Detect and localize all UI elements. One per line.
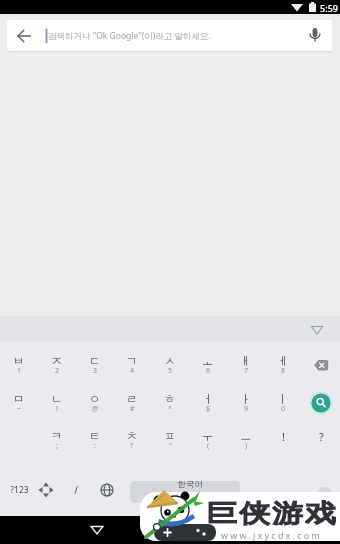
staticText: 한국어	[177, 479, 203, 490]
staticText: ㅜ	[202, 429, 214, 443]
staticText: 2	[55, 366, 60, 376]
staticText: ㄱ	[126, 354, 138, 368]
staticText: "	[169, 441, 172, 451]
button[interactable]	[130, 481, 240, 503]
staticText: 巨	[206, 498, 237, 526]
button[interactable]: ㅇ	[76, 379, 114, 417]
staticText: #	[130, 404, 135, 414]
staticText: ㅇ	[89, 392, 101, 406]
button[interactable]: ㅁ	[0, 379, 38, 417]
staticText: 4	[130, 366, 135, 376]
button[interactable]: ㅜ	[189, 416, 227, 454]
button[interactable]	[77, 516, 117, 544]
staticText: $	[206, 404, 211, 414]
button[interactable]: ㅌ	[76, 416, 114, 454]
staticText: ㅎ	[164, 392, 176, 406]
button[interactable]	[302, 379, 340, 417]
staticText: ?	[130, 441, 134, 451]
staticText: ㅈ	[51, 354, 63, 368]
staticText: :	[94, 441, 96, 451]
button[interactable]: ㄴ	[38, 379, 76, 417]
staticText: 6	[206, 366, 211, 376]
staticText: ㅡ	[240, 429, 252, 443]
button[interactable]	[7, 20, 332, 51]
staticText: 1	[17, 366, 22, 376]
staticText: !	[56, 404, 58, 414]
staticText: /	[74, 483, 78, 497]
button[interactable]: ㄹ	[113, 379, 151, 417]
staticText: 游	[272, 498, 303, 526]
staticText: ?	[319, 429, 324, 444]
staticText: ^	[168, 404, 173, 414]
staticText: ㅗ	[202, 354, 214, 368]
staticText: www.jxycdx.com	[221, 529, 322, 541]
staticText: ;	[56, 441, 58, 451]
staticText: ㅅ	[164, 354, 176, 368]
staticText: ㅋ	[51, 429, 63, 443]
button[interactable]: ㅔ	[264, 341, 302, 379]
staticText: 侠	[239, 498, 270, 526]
button[interactable]: ㅣ	[264, 379, 302, 417]
button[interactable]: ㅍ	[151, 416, 189, 454]
staticText: )	[245, 441, 248, 451]
button[interactable]: ㅋ	[38, 416, 76, 454]
button[interactable]: ㅊ	[113, 416, 151, 454]
button[interactable]: ㅗ	[189, 341, 227, 379]
staticText: ㅁ	[13, 392, 25, 406]
staticText: 8	[281, 366, 286, 376]
staticText: ㅏ	[240, 392, 252, 406]
staticText: 0	[281, 404, 286, 414]
staticText: ㅂ	[13, 354, 25, 368]
staticText: ㅊ	[126, 429, 138, 443]
button[interactable]: ㅓ	[189, 379, 227, 417]
button[interactable]: ㄷ	[76, 341, 114, 379]
button[interactable]: ㅐ	[227, 341, 265, 379]
staticText: ㅌ	[89, 429, 101, 443]
staticText: 검색하거나 "Ok Google"(이)라고 말하세요.	[48, 30, 211, 42]
staticText: ㄹ	[126, 392, 138, 406]
staticText: @	[92, 404, 99, 414]
staticText: 7	[244, 366, 249, 376]
button[interactable]: ㅎ	[151, 379, 189, 417]
button[interactable]: ㅅ	[151, 341, 189, 379]
button[interactable]: ㅂ	[0, 341, 38, 379]
staticText: ~	[17, 404, 22, 414]
staticText: ?123	[10, 484, 29, 496]
staticText: ㄷ	[89, 354, 101, 368]
staticText: ㅐ	[240, 354, 252, 368]
button[interactable]: ㅈ	[38, 341, 76, 379]
staticText: (	[207, 441, 210, 451]
button[interactable]	[302, 341, 340, 379]
staticText: 5	[168, 366, 173, 376]
staticText: ㅔ	[277, 354, 289, 368]
staticText: 戏	[305, 498, 336, 526]
button[interactable]: ㄱ	[113, 341, 151, 379]
staticText: ㅓ	[202, 392, 214, 406]
staticText: !	[282, 429, 285, 444]
staticText: ㄴ	[51, 392, 63, 406]
staticText: 9	[244, 404, 249, 414]
staticText: ㅍ	[164, 429, 176, 443]
button[interactable]: ㅡ	[227, 416, 265, 454]
staticText: 3	[93, 366, 98, 376]
staticText: 5:59	[320, 2, 338, 14]
button[interactable]: ㅏ	[227, 379, 265, 417]
staticText: ㅣ	[277, 392, 289, 406]
